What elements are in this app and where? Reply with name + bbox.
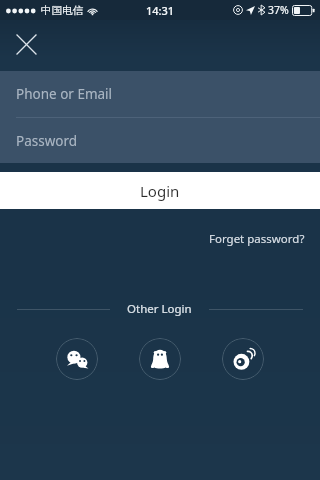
staticText: 中国电信 <box>41 4 83 17</box>
staticText: Password <box>16 132 78 150</box>
staticText: Other Login <box>127 301 192 317</box>
button[interactable]: Password <box>0 118 320 163</box>
button[interactable]: WeChat login <box>56 338 98 380</box>
staticText: Login <box>140 181 180 201</box>
button[interactable]: Close <box>0 20 52 69</box>
button[interactable]: Phone or Email <box>0 71 320 117</box>
staticText: Forget password? <box>209 231 305 247</box>
button[interactable]: QQ login <box>139 338 181 380</box>
staticText: 14:31 <box>146 3 175 18</box>
staticText: 37% <box>268 3 289 17</box>
button[interactable]: Forget password? <box>207 228 307 250</box>
button[interactable]: Login <box>0 172 320 209</box>
staticText: Phone or Email <box>16 85 113 103</box>
button[interactable]: Weibo login <box>222 338 264 380</box>
